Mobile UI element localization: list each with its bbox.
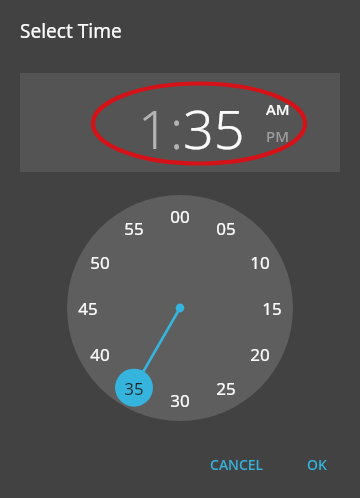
staticText: 10 [250,251,270,274]
staticText: Select Time [20,18,122,44]
button[interactable]: 00 [161,202,199,230]
button[interactable]: 25 [207,374,245,402]
staticText: AM [266,99,290,119]
button[interactable]: 30 [161,386,199,414]
button[interactable]: OK [296,448,338,480]
staticText: 30 [170,389,190,412]
button[interactable]: 45 [69,294,107,322]
staticText: 50 [90,251,110,274]
staticText: 40 [90,343,110,366]
staticText: 00 [170,205,190,228]
button[interactable]: 1 [133,91,169,155]
button[interactable]: 55 [115,214,153,242]
button[interactable]: PM [266,122,306,149]
button[interactable]: CANCEL [196,448,278,480]
staticText: 05 [216,217,236,240]
button[interactable]: AM [266,95,306,122]
staticText: 1 [138,91,169,155]
button[interactable]: 15 [253,294,291,322]
staticText: 25 [216,377,236,400]
button[interactable]: 40 [81,340,119,368]
staticText: OK [307,455,327,474]
button[interactable]: 05 [207,214,245,242]
button[interactable]: 35 [183,91,261,155]
staticText: 20 [250,343,270,366]
staticText: 55 [124,217,144,240]
button[interactable]: 20 [241,340,279,368]
staticText: : [170,91,184,155]
staticText: 35 [124,377,144,400]
staticText: 35 [183,91,245,155]
button[interactable]: 35 [115,374,153,402]
button[interactable]: 10 [241,248,279,276]
staticText: CANCEL [210,455,264,474]
staticText: PM [266,126,289,146]
staticText: 45 [78,297,98,320]
button[interactable]: 50 [81,248,119,276]
staticText: 15 [262,297,282,320]
